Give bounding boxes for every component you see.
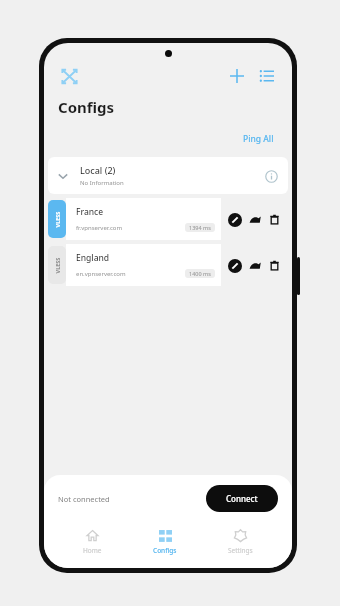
staticText: Local (2)	[80, 164, 116, 176]
button[interactable]: Configs	[141, 526, 189, 558]
button[interactable]: Share	[246, 257, 263, 274]
button[interactable]: Settings	[216, 526, 265, 558]
staticText: Not connected	[58, 494, 110, 504]
staticText: VLESS	[53, 257, 60, 273]
staticText: Configs	[58, 97, 115, 117]
staticText: fr.vpnserver.com	[76, 224, 123, 232]
button[interactable]: Menu	[254, 63, 280, 89]
button[interactable]: Home	[71, 526, 114, 558]
button[interactable]: Information	[262, 167, 280, 185]
staticText: England	[76, 252, 110, 264]
button[interactable]: VLESS	[48, 198, 288, 240]
staticText: VLESS	[53, 211, 60, 227]
button[interactable]: Connect	[206, 485, 278, 512]
staticText: Ping All	[243, 133, 274, 145]
button[interactable]: Ping All	[239, 131, 278, 147]
staticText: Home	[83, 546, 102, 555]
staticText: Settings	[228, 546, 253, 555]
staticText: 1400 ms	[189, 270, 211, 277]
button[interactable]: Edit	[226, 257, 243, 274]
staticText: en.vpnserver.com	[76, 270, 126, 278]
button[interactable]: Local (2)	[48, 157, 288, 194]
staticText: No Information	[80, 179, 124, 187]
staticText: 1394 ms	[189, 224, 211, 231]
button[interactable]: VLESS	[48, 244, 288, 286]
button[interactable]: App logo	[56, 63, 82, 89]
staticText: Configs	[153, 546, 177, 555]
staticText: France	[76, 206, 104, 218]
button[interactable]: Share	[246, 211, 263, 228]
button[interactable]: Delete	[266, 257, 283, 274]
button[interactable]: Add config	[224, 63, 250, 89]
button[interactable]: Delete	[266, 211, 283, 228]
button[interactable]: Edit	[226, 211, 243, 228]
staticText: Connect	[226, 493, 258, 504]
